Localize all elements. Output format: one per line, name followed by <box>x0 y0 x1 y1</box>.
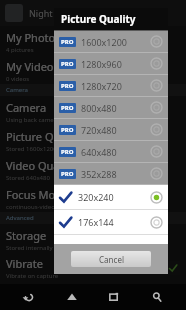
button[interactable]: Shutter Sound <box>0 282 186 310</box>
button[interactable]: PRO <box>54 31 168 53</box>
staticText: PRO <box>61 148 74 156</box>
staticText: My Videos <box>6 59 59 74</box>
staticText: continuous-video <box>6 203 55 211</box>
staticText: Focus Mode <box>6 187 69 202</box>
button[interactable]: My Videos <box>0 55 186 84</box>
button[interactable]: Picture Quality <box>0 125 186 154</box>
other: Unselected option <box>150 145 163 158</box>
button[interactable]: PRO <box>54 53 168 75</box>
button[interactable]: PRO <box>54 141 168 163</box>
staticText: 1280x960 <box>81 58 150 70</box>
staticText: 1280x720 <box>81 80 150 92</box>
staticText: Stored internally <box>6 244 53 252</box>
staticText: PRO <box>61 126 74 134</box>
staticText: 0 videos <box>6 75 30 83</box>
staticText: Stored 640x480 <box>6 174 50 182</box>
staticText: 320x240 <box>78 191 150 203</box>
staticText: PRO <box>61 60 74 68</box>
staticText: 800x480 <box>81 102 150 114</box>
button[interactable]: Home <box>59 284 85 310</box>
staticText: Storage <box>6 228 47 243</box>
staticText: PRO <box>61 82 74 90</box>
staticText: 176x144 <box>78 216 150 228</box>
other: Unselected option <box>150 35 163 48</box>
staticText: 640x480 <box>81 146 150 158</box>
other: Unselected option <box>150 79 163 92</box>
staticText: PRO <box>61 38 74 46</box>
other: Unselected option <box>150 101 163 114</box>
staticText: Cancel <box>99 254 124 265</box>
button[interactable]: Video Quality <box>0 154 186 183</box>
other: Unselected option <box>150 216 163 229</box>
staticText: 352x288 <box>81 168 150 180</box>
staticText: 720x480 <box>81 124 150 136</box>
staticText: PRO <box>61 104 74 112</box>
staticText: 1600x1200 <box>81 36 150 48</box>
button[interactable]: PRO <box>54 97 168 119</box>
staticText: My Photos <box>6 30 61 45</box>
staticText: Stored 1600x1200 <box>6 145 57 153</box>
button[interactable]: PRO <box>54 119 168 141</box>
staticText: Night Video Recorder Camera <box>29 7 155 19</box>
staticText: Vibrate <box>6 256 43 271</box>
staticText: Camera <box>6 86 28 94</box>
staticText: PRO <box>61 170 74 178</box>
staticText: Shutter Sound <box>6 286 81 301</box>
staticText: 4 pictures <box>6 46 34 54</box>
button[interactable]: PRO <box>54 75 168 97</box>
staticText: Picture Quality <box>6 129 82 144</box>
staticText: Camera <box>6 100 47 115</box>
staticText: Advanced <box>6 214 34 222</box>
staticText: Picture Quality <box>61 12 136 26</box>
button[interactable]: Camera <box>0 96 186 125</box>
button[interactable]: Back <box>16 284 42 310</box>
button[interactable]: PRO <box>54 163 168 185</box>
button[interactable]: Search <box>144 284 170 310</box>
other: Unselected option <box>150 57 163 70</box>
staticText: Video Quality <box>6 158 75 173</box>
button[interactable]: My Photos <box>0 26 186 55</box>
button[interactable]: Storage <box>0 224 186 253</box>
staticText: Vibrate on capture <box>6 272 59 280</box>
button[interactable]: Vibrate <box>0 253 186 282</box>
other: Selected option <box>150 191 163 204</box>
button[interactable]: Recents <box>101 284 127 310</box>
other: Unselected option <box>150 167 163 180</box>
staticText: Using back camera <box>6 116 60 124</box>
button[interactable]: Focus Mode <box>0 183 186 212</box>
other: Unselected option <box>150 123 163 136</box>
button[interactable]: 176x144 <box>54 210 168 235</box>
button[interactable]: 320x240 <box>54 185 168 210</box>
button[interactable]: Cancel <box>71 251 151 267</box>
